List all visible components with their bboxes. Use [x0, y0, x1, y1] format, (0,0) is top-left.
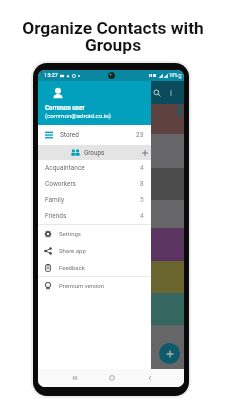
staticText: Settings: [59, 230, 81, 237]
button[interactable]: Feedback: [38, 259, 151, 276]
button[interactable]: Share app: [38, 242, 151, 259]
staticText: 5: [140, 196, 144, 204]
button[interactable]: Premium version: [38, 277, 151, 294]
staticText: Stored: [60, 131, 79, 139]
button[interactable]: Groups: [38, 145, 151, 160]
staticText: Groups: [84, 149, 105, 156]
button[interactable]: Acquaintance: [38, 160, 151, 176]
button[interactable]: Family: [38, 192, 151, 208]
staticText: 4: [140, 164, 144, 172]
staticText: Coworkers: [45, 180, 76, 188]
button[interactable]: More options: [164, 86, 178, 100]
button[interactable]: Home: [93, 369, 131, 387]
staticText: 23: [136, 131, 144, 139]
button[interactable]: Add contact: [159, 343, 180, 364]
staticText: 10%: [169, 73, 178, 78]
staticText: Common user: [45, 104, 85, 111]
staticText: Friends: [45, 212, 67, 220]
staticText: 8: [140, 180, 144, 188]
button[interactable]: Friends: [38, 208, 151, 224]
staticText: Acquaintance: [45, 164, 85, 172]
staticText: Share app: [59, 247, 86, 254]
staticText: Feedback: [59, 264, 85, 271]
button[interactable]: Search: [150, 86, 164, 100]
button[interactable]: Back: [131, 369, 169, 387]
staticText: 4: [140, 212, 144, 220]
button[interactable]: Settings: [38, 225, 151, 242]
staticText: (common@adroid.co.in): [45, 112, 111, 119]
staticText: Organize Contacts with Groups: [22, 18, 204, 56]
staticText: Family: [45, 196, 64, 204]
staticText: Premium version: [59, 282, 105, 289]
button[interactable]: Coworkers: [38, 176, 151, 192]
staticText: 15:27: [44, 72, 58, 79]
button[interactable]: Recent apps: [56, 369, 93, 387]
button[interactable]: Stored: [38, 125, 151, 145]
